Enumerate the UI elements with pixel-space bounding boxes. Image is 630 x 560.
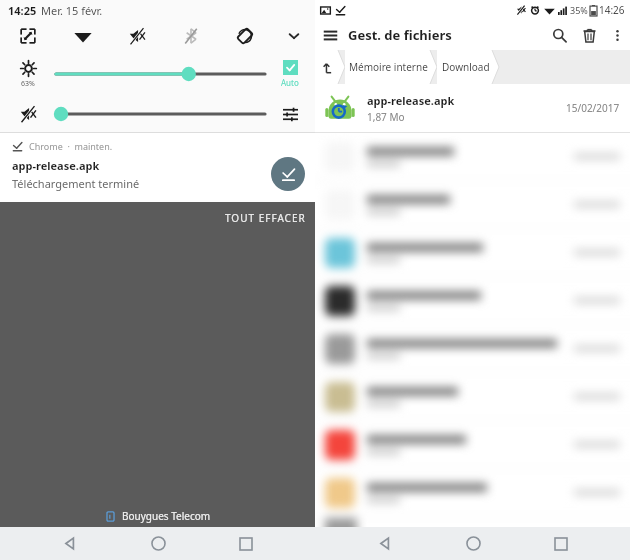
button[interactable]: 63% bbox=[0, 60, 56, 89]
button[interactable] bbox=[315, 133, 630, 180]
button[interactable]: Back bbox=[364, 527, 404, 560]
button[interactable] bbox=[315, 469, 630, 516]
button[interactable]: More options bbox=[604, 22, 630, 48]
button[interactable] bbox=[315, 229, 630, 276]
staticText: Auto bbox=[281, 77, 299, 88]
staticText: 14:25 bbox=[8, 3, 37, 18]
staticText: app-release.apk bbox=[367, 93, 455, 108]
staticText: 1,87 Mo bbox=[367, 110, 405, 124]
staticText: Download bbox=[442, 60, 490, 74]
button[interactable]: More settings bbox=[272, 20, 315, 52]
button[interactable] bbox=[315, 373, 630, 420]
button[interactable]: Chrome · mainten. bbox=[0, 133, 315, 202]
staticText: 63% bbox=[21, 79, 35, 89]
staticText: 35% bbox=[570, 4, 588, 16]
staticText: Mémoire interne bbox=[349, 60, 428, 74]
staticText: Gest. de fichiers bbox=[348, 26, 452, 44]
button[interactable]: Download bbox=[437, 50, 499, 84]
button[interactable]: Wi-Fi bbox=[55, 20, 110, 52]
button[interactable]: Auto bbox=[265, 60, 315, 88]
button[interactable] bbox=[0, 105, 56, 123]
staticText: app-release.apk bbox=[12, 158, 100, 173]
button[interactable] bbox=[315, 181, 630, 228]
staticText: 15/02/2017 bbox=[566, 101, 620, 115]
button[interactable]: Home bbox=[453, 527, 493, 560]
button[interactable] bbox=[315, 325, 630, 372]
button[interactable]: Recent apps bbox=[226, 527, 266, 560]
staticText: Bouygues Telecom bbox=[122, 509, 211, 523]
button[interactable]: Menu bbox=[315, 20, 345, 50]
button[interactable]: Bluetooth bbox=[164, 20, 218, 52]
button[interactable] bbox=[56, 101, 265, 127]
button[interactable]: Sound settings bbox=[265, 96, 315, 132]
button[interactable]: Mémoire interne bbox=[345, 50, 437, 84]
button[interactable]: Delete bbox=[574, 20, 604, 50]
button[interactable]: Back bbox=[49, 527, 89, 560]
staticText: Téléchargement terminé bbox=[12, 176, 140, 191]
button[interactable] bbox=[315, 277, 630, 324]
button[interactable] bbox=[56, 61, 265, 87]
button[interactable] bbox=[315, 421, 630, 468]
button[interactable]: Home bbox=[138, 527, 178, 560]
button[interactable]: Search bbox=[544, 20, 574, 50]
staticText: Chrome · mainten. bbox=[29, 140, 113, 152]
button[interactable]: app-release.apk bbox=[315, 84, 630, 132]
button[interactable]: TOUT EFFACER bbox=[225, 211, 306, 225]
button[interactable]: Rotation lock bbox=[218, 20, 272, 52]
button[interactable]: Sound off bbox=[110, 20, 164, 52]
button[interactable]: Recent apps bbox=[541, 527, 581, 560]
staticText: Mer. 15 févr. bbox=[41, 3, 103, 18]
staticText: 14:26 bbox=[599, 3, 625, 17]
button[interactable] bbox=[315, 50, 345, 84]
button[interactable]: Expand screen bbox=[0, 20, 55, 52]
button[interactable]: Open download bbox=[271, 157, 305, 191]
